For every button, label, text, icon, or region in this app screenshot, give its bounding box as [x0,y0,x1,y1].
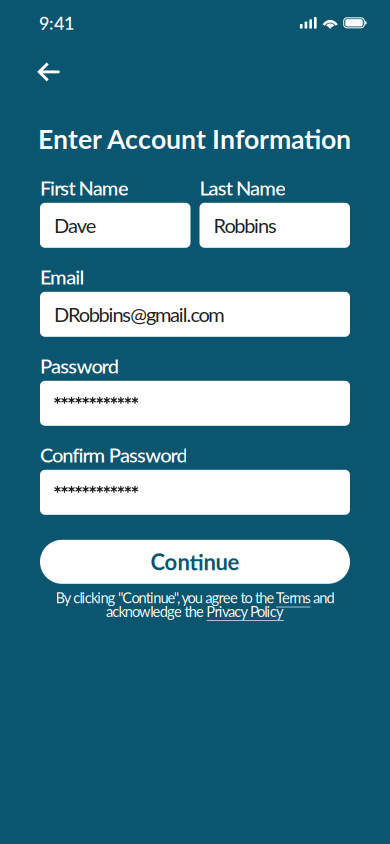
staticText: DRobbins@gmail.com [54,302,224,326]
staticText: By clicking "Continue", you agree to the… [56,589,334,606]
button[interactable]: Back [0,57,75,88]
staticText: Continue [150,549,239,575]
staticText: Email [40,265,84,289]
staticText: acknowledge the Privacy Policy [106,602,284,620]
staticText: Robbins [213,213,277,237]
staticText: Dave [54,213,97,237]
button[interactable]: Continue [40,540,350,584]
staticText: 9:41 [39,12,74,34]
staticText: Confirm Password [40,443,187,467]
staticText: First Name [40,176,129,200]
staticText: Password [40,354,119,378]
staticText: Last Name [199,176,286,200]
staticText: Enter Account Information [38,123,351,155]
